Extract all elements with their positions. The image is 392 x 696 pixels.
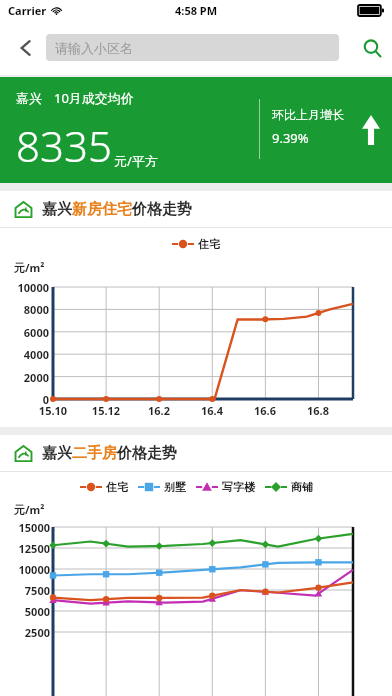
staticText: 6000	[4, 325, 49, 340]
staticText: 请输入小区名	[55, 40, 133, 56]
staticText: 元/平方	[114, 152, 158, 170]
staticText: 2500	[8, 625, 50, 640]
staticText: 商铺	[291, 480, 313, 494]
staticText: 4:58 PM	[175, 3, 218, 18]
staticText: 15.10	[35, 403, 71, 418]
staticText: 2000	[4, 370, 49, 385]
staticText: 8000	[4, 302, 49, 317]
staticText: 15.12	[88, 403, 124, 418]
staticText: 16.2	[141, 403, 177, 418]
staticText: 住宅	[198, 237, 220, 251]
button[interactable]: 嘉兴	[0, 77, 392, 183]
staticText: 环比上月增长	[272, 107, 344, 122]
staticText: 4000	[4, 347, 49, 362]
staticText: 元/m²	[14, 502, 45, 517]
staticText: 16.8	[300, 403, 336, 418]
staticText: 10月成交均价	[54, 89, 134, 107]
staticText: 8335	[16, 117, 112, 174]
button[interactable]: Search	[352, 28, 392, 68]
staticText: 元/m²	[14, 260, 45, 275]
staticText: 16.6	[247, 403, 283, 418]
button[interactable]: 嘉兴新房住宅价格走势	[0, 191, 392, 227]
staticText: Carrier	[8, 3, 47, 18]
staticText: 别墅	[164, 480, 186, 494]
staticText: 10000	[8, 562, 50, 577]
staticText: 住宅	[106, 480, 128, 494]
staticText: 10000	[4, 280, 49, 295]
staticText: 15000	[8, 520, 50, 535]
staticText: 5000	[8, 604, 50, 619]
staticText: 12500	[8, 541, 50, 556]
button[interactable]: 嘉兴二手房价格走势	[0, 435, 392, 471]
staticText: 9.39%	[272, 129, 309, 147]
staticText: 0	[4, 392, 49, 407]
staticText: 16.4	[194, 403, 230, 418]
button[interactable]: Back	[8, 30, 44, 66]
staticText: 嘉兴	[16, 90, 42, 106]
button[interactable]: 请输入小区名	[46, 34, 339, 61]
staticText: 嘉兴新房住宅价格走势	[42, 200, 192, 219]
staticText: 写字楼	[222, 480, 255, 494]
staticText: 7500	[8, 583, 50, 598]
staticText: 嘉兴二手房价格走势	[42, 444, 177, 463]
